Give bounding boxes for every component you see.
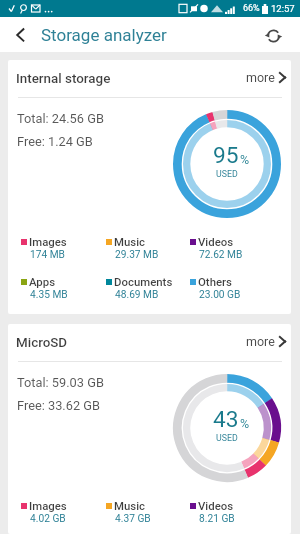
staticText: 4.02 GB [30,513,66,525]
staticText: Music [114,235,146,248]
staticText: 4.35 MB [30,289,68,301]
staticText: 8.21 GB [199,513,235,525]
button[interactable]: Videos [190,500,272,524]
staticText: 72.62 MB [199,249,243,261]
staticText: Apps [29,275,56,288]
button[interactable]: Documents [106,276,188,300]
button[interactable]: Others [190,276,272,300]
staticText: 43 [213,406,239,433]
staticText: Documents [114,275,173,288]
staticText: 23.00 GB [199,289,241,301]
button[interactable]: Videos [190,236,272,260]
staticText: % [240,152,250,167]
button[interactable]: Images [21,236,103,260]
staticText: Storage analyzer [41,25,167,45]
staticText: Free: 1.24 GB [17,134,93,149]
staticText: 95 [213,142,239,169]
staticText: Others [198,275,232,288]
staticText: MicroSD [16,335,68,351]
staticText: Images [29,499,67,512]
staticText: more [246,334,275,349]
staticText: 174 MB [30,249,65,261]
button[interactable]: MicroSD [8,324,291,534]
staticText: 4.37 GB [115,513,151,525]
button[interactable]: more [244,334,288,349]
staticText: more [246,70,275,85]
button[interactable]: Music [106,236,188,260]
staticText: Total: 24.56 GB [17,111,104,126]
button[interactable]: more [244,70,288,85]
staticText: Videos [198,499,234,512]
staticText: USED [216,169,238,179]
staticText: Music [114,499,146,512]
button[interactable]: Internal storage [8,60,291,314]
button[interactable]: Images [21,500,103,524]
button[interactable]: Apps [21,276,103,300]
staticText: Internal storage [16,71,111,87]
staticText: 48.69 MB [115,289,159,301]
staticText: 66% [243,3,260,14]
staticText: 12:57 [271,3,295,14]
staticText: Images [29,235,67,248]
staticText: Free: 33.62 GB [17,398,100,413]
staticText: USED [216,433,238,443]
button[interactable]: Refresh [254,18,292,53]
staticText: Total: 59.03 GB [17,375,104,390]
staticText: Videos [198,235,234,248]
staticText: % [240,416,250,431]
staticText: 29.37 MB [115,249,159,261]
button[interactable]: Music [106,500,188,524]
button[interactable]: Back [0,17,40,52]
